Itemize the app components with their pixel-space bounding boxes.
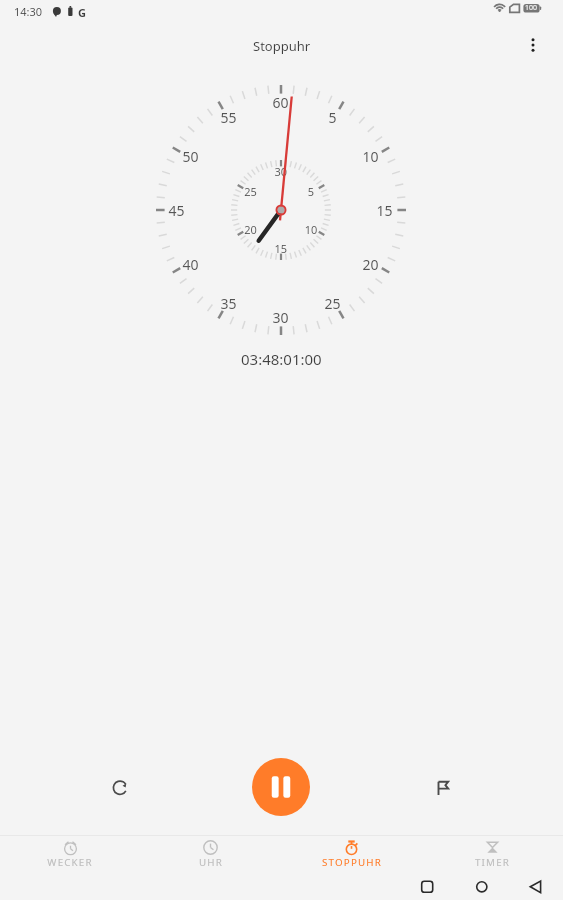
button[interactable]: UHR [140, 836, 281, 869]
staticText: STOPPUHR [322, 856, 382, 869]
staticText: 14:30 [14, 4, 43, 19]
staticText: 03:48:01:00 [241, 349, 322, 369]
button[interactable]: WECKER [0, 836, 140, 869]
staticText: UHR [199, 856, 223, 869]
button[interactable]: Pause [252, 758, 310, 816]
button[interactable]: Lap [422, 764, 469, 811]
button[interactable]: STOPPUHR [281, 836, 422, 869]
staticText: WECKER [47, 856, 93, 869]
button[interactable]: TIMER [422, 836, 563, 869]
staticText: Stoppuhr [253, 37, 311, 55]
button[interactable]: Reset [96, 764, 143, 811]
staticText: TIMER [475, 856, 510, 869]
button[interactable]: More options [517, 29, 549, 61]
